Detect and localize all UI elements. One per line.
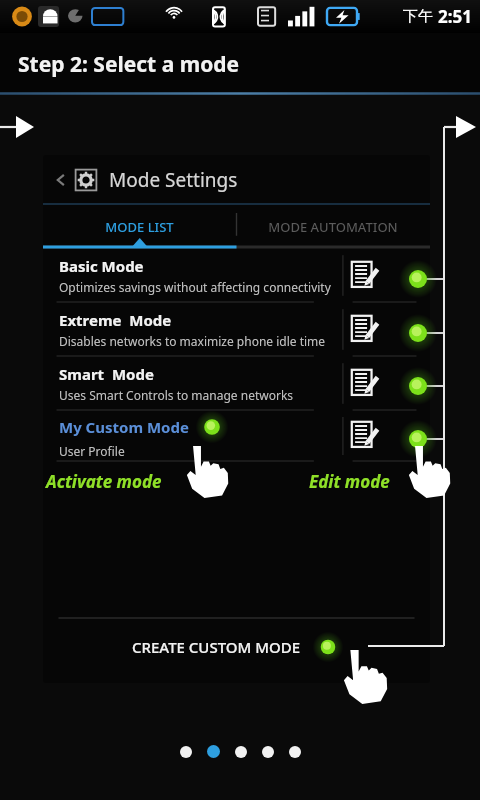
button[interactable]: Edit mode <box>348 419 382 453</box>
staticText: Smart Mode <box>59 364 154 384</box>
staticText: 下午 <box>403 7 433 26</box>
staticText: MODE LIST <box>105 218 174 236</box>
button[interactable]: MODE AUTOMATION <box>236 205 430 249</box>
staticText: 2:51 <box>438 5 472 28</box>
staticText: Optimizes savings without affecting conn… <box>59 279 331 295</box>
button[interactable]: Extreme Mode <box>43 303 430 356</box>
button[interactable] <box>289 746 301 758</box>
staticText: Basic Mode <box>59 256 144 276</box>
button[interactable] <box>180 746 192 758</box>
staticText: Uses Smart Controls to manage networks <box>59 387 294 403</box>
other: Back <box>53 172 69 188</box>
button[interactable]: CREATE CUSTOM MODE <box>43 619 430 675</box>
button[interactable]: Edit mode <box>348 313 382 347</box>
button[interactable]: MODE LIST <box>43 205 236 249</box>
staticText: Mode Settings <box>109 167 238 193</box>
staticText: Activate mode <box>46 470 162 493</box>
staticText: Step 2: Select a mode <box>18 50 240 79</box>
button[interactable]: Basic Mode <box>43 249 430 302</box>
button[interactable] <box>207 745 220 758</box>
button[interactable]: Edit mode <box>348 259 382 293</box>
staticText: Disables networks to maximize phone idle… <box>59 333 326 349</box>
button[interactable] <box>262 746 274 758</box>
staticText: CREATE CUSTOM MODE <box>132 637 301 657</box>
staticText: My Custom Mode <box>59 417 189 437</box>
staticText: Extreme Mode <box>59 310 172 330</box>
button[interactable]: My Custom Mode <box>43 411 430 461</box>
staticText: MODE AUTOMATION <box>268 218 398 236</box>
button[interactable]: Edit mode <box>348 367 382 401</box>
staticText: User Profile <box>59 443 125 459</box>
button[interactable] <box>235 746 247 758</box>
button[interactable]: Smart Mode <box>43 357 430 410</box>
button[interactable]: Back <box>53 167 238 193</box>
staticText: Edit mode <box>309 470 390 493</box>
